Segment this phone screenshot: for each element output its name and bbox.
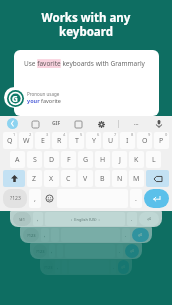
button[interactable]: J [112,151,127,168]
button[interactable]: P [154,132,169,149]
button[interactable]: E [35,132,50,149]
staticText: , [34,194,36,204]
staticText: ••• [134,122,139,127]
button[interactable]: , [29,189,41,208]
staticText: . [131,216,133,223]
staticText: 8 [131,132,134,137]
staticText: 2 [29,132,32,137]
staticText: Z [32,174,37,184]
button[interactable]: ?123 [23,228,39,242]
staticText: your favorite [27,97,61,104]
button[interactable]: R [52,132,67,149]
staticText: H [100,155,106,165]
button[interactable]: B [95,170,110,187]
button[interactable]: W [19,132,33,149]
staticText: Use favorite keyboards with Grammarly [24,59,145,68]
staticText: Q [7,136,13,146]
staticText: G [12,93,18,104]
staticText: O [142,136,148,146]
button[interactable]: !#1 [13,212,31,226]
staticText: M [133,174,140,184]
staticText: A [15,155,20,165]
button[interactable]: O [137,132,152,149]
button[interactable]: H [95,151,110,168]
button[interactable]: D [44,151,59,168]
staticText: S [33,155,37,165]
staticText: 7 [114,132,117,137]
button[interactable]: Stickers [29,118,41,130]
button[interactable]: M [129,170,144,187]
staticText: ?123 [27,233,36,238]
staticText: R [57,136,62,146]
staticText: ?123 [10,195,21,202]
button[interactable]: N [112,170,127,187]
button[interactable]: A [10,151,25,168]
staticText: T [75,136,79,146]
button[interactable]: Emoji [43,189,55,208]
button[interactable]: Z [27,170,42,187]
button[interactable]: Y [86,132,101,149]
staticText: 3 [46,132,49,137]
button[interactable]: Settings [95,118,107,130]
button[interactable]: X [44,170,59,187]
staticText: ⏎ [138,232,143,238]
staticText: Pronoun usage [27,91,60,97]
button[interactable]: L [146,151,161,168]
staticText: . [135,194,137,204]
button[interactable]: . [130,189,142,208]
button[interactable]: GIF [52,120,61,127]
staticText: F [67,155,71,165]
staticText: U [108,136,114,146]
button[interactable]: ?123 [33,244,47,258]
staticText: 0 [165,132,168,137]
button[interactable]: Backspace [146,170,169,187]
button[interactable]: Clipboard [72,118,84,130]
button[interactable]: F [61,151,76,168]
staticText: D [49,155,55,165]
button[interactable]: I [120,132,135,149]
button[interactable]: V [78,170,93,187]
staticText: !#1 [19,217,25,222]
button[interactable]: Enter [144,189,169,208]
staticText: ‹ English (US) › [71,217,100,222]
button[interactable]: Shift [3,170,25,187]
button[interactable]: K [129,151,144,168]
staticText: 6 [97,132,100,137]
staticText: , [51,248,53,255]
button[interactable]: U [103,132,118,149]
button[interactable]: Q [3,132,17,149]
button[interactable]: , [33,212,43,226]
button[interactable]: Voice input [153,118,165,130]
button[interactable]: More [130,118,142,130]
button[interactable]: ?123 [3,189,27,208]
staticText: 9 [148,132,151,137]
button[interactable]: G [4,87,70,108]
button[interactable]: G [78,151,93,168]
button[interactable]: ‹ English (US) › [45,212,125,226]
staticText: E [41,136,45,146]
button[interactable]: Grammarly [7,118,18,129]
staticText: L [152,155,156,165]
button[interactable]: S [27,151,42,168]
button[interactable]: T [69,132,84,149]
button[interactable]: C [61,170,76,187]
